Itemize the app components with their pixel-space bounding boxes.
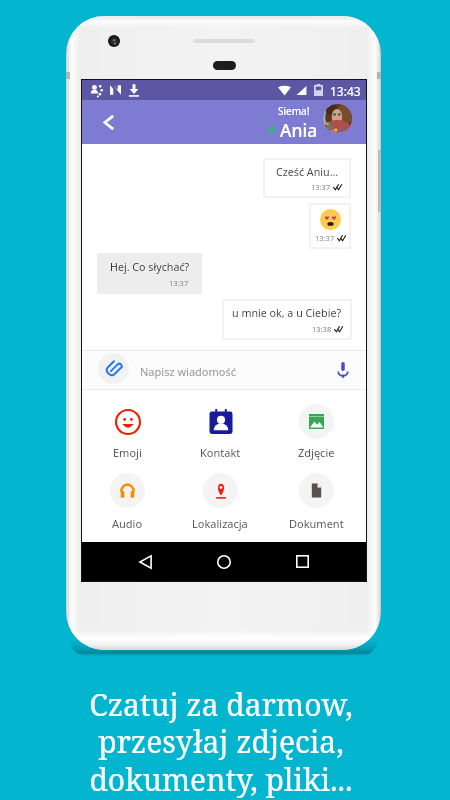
button[interactable]: u mnie ok, a u Ciebie? xyxy=(223,300,351,339)
staticText: Czatuj za darmow, przesyłaj zdjęcia, dok… xyxy=(89,684,353,800)
button[interactable]: Back xyxy=(121,542,169,581)
button[interactable]: Hej. Co słychać? xyxy=(97,253,202,294)
button[interactable]: Audio xyxy=(91,469,163,531)
staticText: Cześć Aniu... xyxy=(276,165,339,180)
staticText: 13:37 xyxy=(169,278,189,288)
staticText: 13:43 xyxy=(330,83,361,99)
other: Attach xyxy=(98,353,129,384)
button[interactable]: Recent apps xyxy=(278,542,326,581)
button[interactable]: Voice message xyxy=(332,359,353,380)
staticText: Kontakt xyxy=(200,445,241,460)
button[interactable]: Home xyxy=(200,542,248,581)
button[interactable]: Attach xyxy=(82,350,366,390)
button[interactable]: Ania profile photo xyxy=(323,104,352,133)
staticText: 13:37 xyxy=(311,182,331,192)
staticText: u mnie ok, a u Ciebie? xyxy=(232,306,342,321)
button[interactable]: Back xyxy=(87,100,130,144)
staticText: Napisz wiadomość xyxy=(140,364,236,379)
button[interactable]: Kontakt xyxy=(184,400,256,460)
staticText: 13:37 xyxy=(315,233,335,243)
button[interactable]: Emoji xyxy=(91,400,163,460)
button[interactable]: Zdjęcie xyxy=(280,400,352,460)
staticText: Lokalizacja xyxy=(192,516,248,531)
staticText: 13:38 xyxy=(312,324,332,334)
staticText: Emoji xyxy=(113,445,142,460)
button[interactable]: Dokument xyxy=(280,469,352,531)
button[interactable]: 13:37 xyxy=(310,204,350,248)
staticText: Zdjęcie xyxy=(298,445,335,460)
staticText: Dokument xyxy=(289,516,344,531)
staticText: Hej. Co słychać? xyxy=(110,260,190,275)
staticText: Siema! xyxy=(278,104,310,118)
staticText: Ania xyxy=(280,118,318,142)
staticText: Audio xyxy=(112,516,143,531)
button[interactable]: Cześć Aniu... xyxy=(264,159,350,197)
button[interactable]: Lokalizacja xyxy=(184,469,256,531)
